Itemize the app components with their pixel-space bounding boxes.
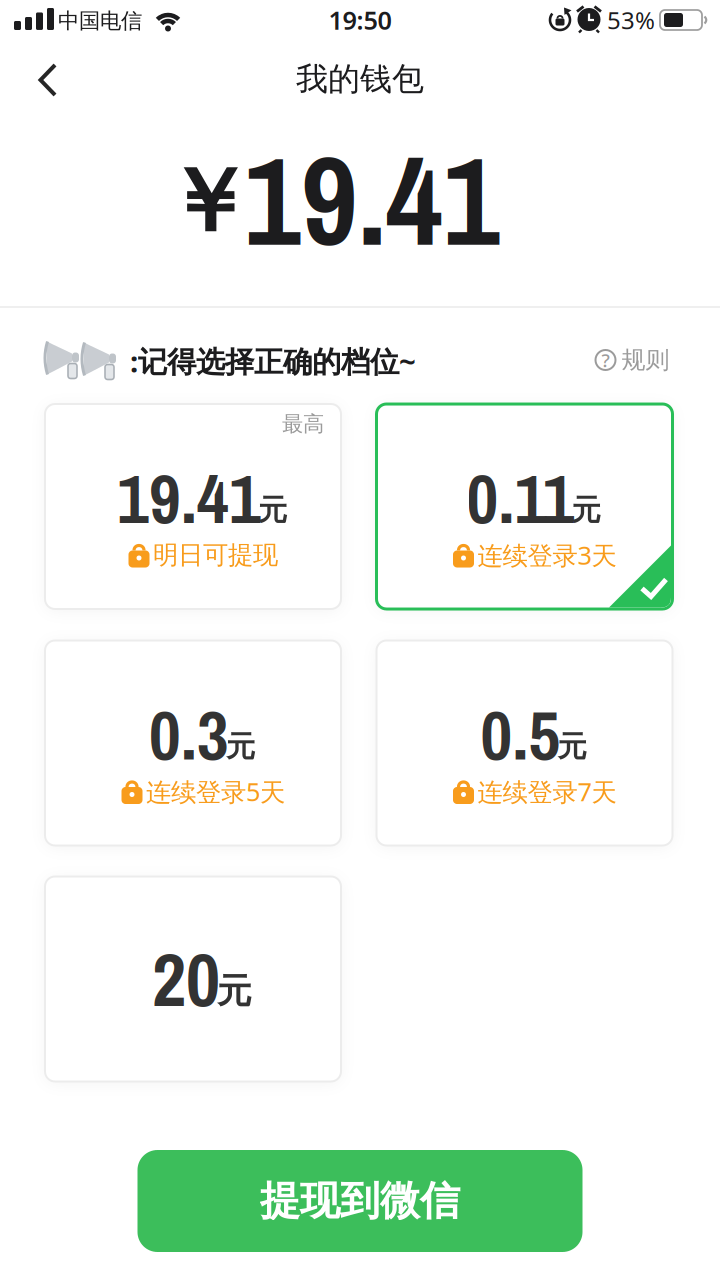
button[interactable]: 19.41 [45,404,341,609]
button[interactable]: 提现到微信 [137,1150,582,1252]
staticText: 连续登录3天 [477,538,616,572]
staticText: 0.11 [466,451,574,545]
staticText: 规则 [621,345,669,375]
button[interactable]: 返回 [28,53,67,107]
button[interactable]: 20 [45,876,341,1081]
staticText: ? [601,348,609,372]
button[interactable]: 0.5 [376,640,672,845]
staticText: ￥ [164,148,252,256]
button[interactable]: 规则 [594,345,669,375]
staticText: 明日可提现 [153,539,278,570]
button[interactable]: 0.11 [376,404,672,609]
staticText: 0.5 [480,688,560,781]
staticText: 0.3 [149,688,229,781]
staticText: 元 [557,728,586,764]
staticText: 连续登录5天 [146,775,285,808]
staticText: 最高 [282,411,324,437]
staticText: :记得选择正确的档位~ [130,341,416,380]
staticText: 我的钱包 [296,59,424,99]
staticText: 19.41 [117,451,261,545]
staticText: 中国电信 [58,8,142,34]
staticText: 元 [226,728,255,764]
staticText: 19.41 [244,116,500,283]
staticText: 连续登录7天 [477,775,616,808]
staticText: 元 [217,970,252,1012]
staticText: 元 [571,492,600,528]
staticText: 提现到微信 [260,1176,460,1225]
button[interactable]: 0.3 [45,640,341,845]
staticText: 20 [152,929,220,1029]
staticText: 19:50 [328,3,391,37]
staticText: 53% [607,4,655,36]
staticText: 元 [258,492,287,528]
